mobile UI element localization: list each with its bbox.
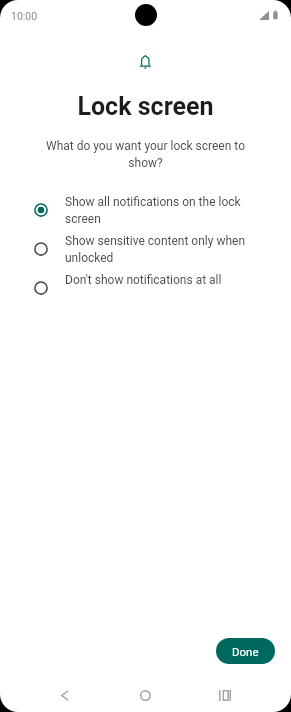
button[interactable]: Home bbox=[131, 681, 159, 709]
staticText: Show all notifications on the lock scree… bbox=[65, 195, 265, 226]
button[interactable]: Show sensitive content only when unlocke… bbox=[0, 228, 291, 287]
button[interactable]: Don't show notifications at all bbox=[0, 267, 291, 309]
staticText: Don't show notifications at all bbox=[65, 273, 222, 287]
staticText: Lock screen bbox=[0, 92, 291, 121]
button[interactable]: Show all notifications on the lock scree… bbox=[0, 189, 291, 248]
button[interactable]: Back bbox=[51, 681, 79, 709]
staticText: Done bbox=[232, 645, 259, 658]
button[interactable]: Done bbox=[216, 638, 275, 664]
button[interactable]: Recent apps bbox=[211, 681, 239, 709]
staticText: 10:00 bbox=[11, 10, 38, 22]
staticText: Show sensitive content only when unlocke… bbox=[65, 234, 265, 265]
staticText: What do you want your lock screen to sho… bbox=[40, 139, 251, 170]
